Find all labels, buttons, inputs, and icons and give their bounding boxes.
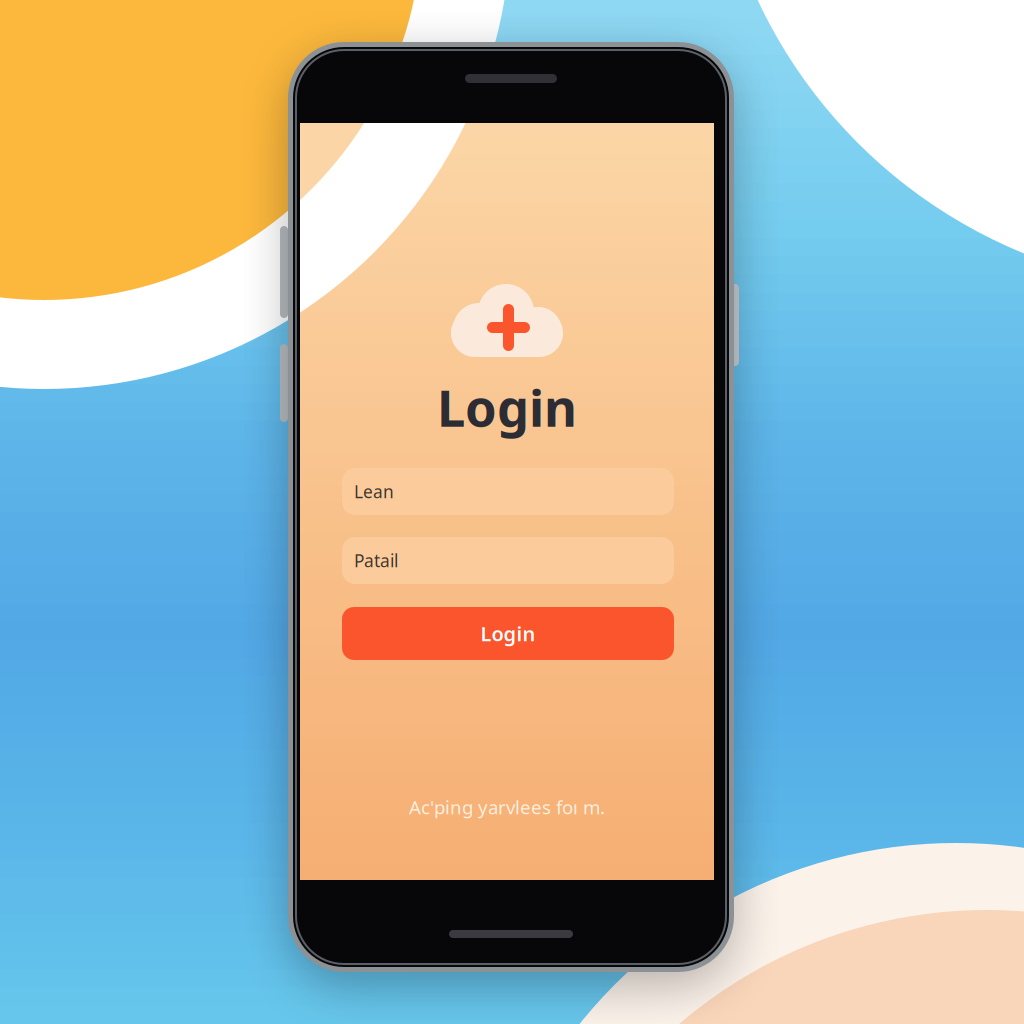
staticText: Ac'ping yarvlees foı m. [409, 795, 605, 819]
staticText: Lean [354, 480, 394, 503]
button[interactable]: Lean [342, 468, 674, 515]
staticText: Patail [354, 549, 398, 572]
button[interactable]: Login [342, 607, 674, 660]
button[interactable]: Patail [342, 537, 674, 584]
staticText: Login [480, 620, 535, 647]
staticText: Login [437, 373, 577, 441]
